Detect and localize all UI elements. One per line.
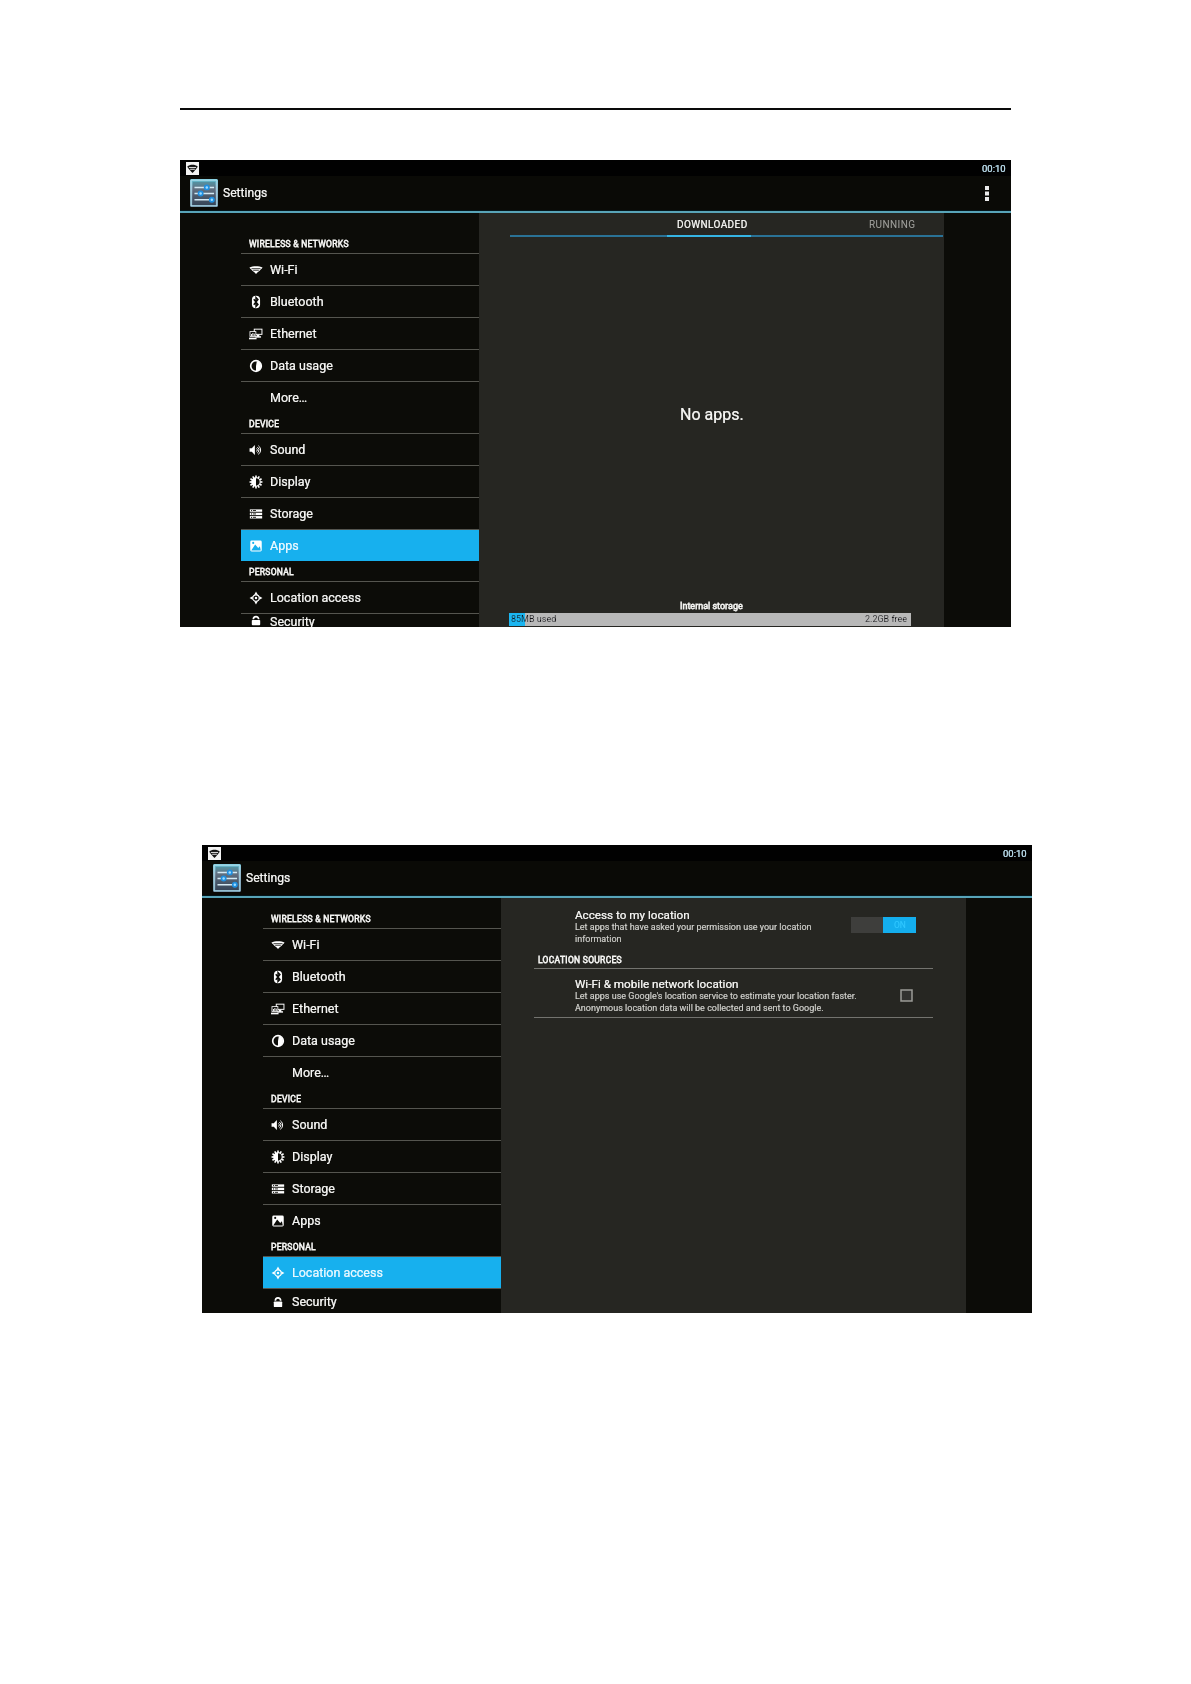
button[interactable]: RUNNING bbox=[845, 213, 939, 237]
staticText: Settings bbox=[223, 186, 268, 200]
staticText: Data usage bbox=[270, 358, 333, 373]
staticText: Wi-Fi bbox=[270, 262, 298, 277]
staticText: Security bbox=[292, 1294, 337, 1309]
staticText: Bluetooth bbox=[270, 294, 324, 309]
button[interactable]: Apps bbox=[263, 1205, 501, 1236]
staticText: DEVICE bbox=[249, 419, 280, 429]
button[interactable]: DOWNLOADED bbox=[668, 213, 756, 237]
staticText: PERSONAL bbox=[271, 1242, 316, 1252]
staticText: Sound bbox=[292, 1117, 328, 1132]
staticText: Display bbox=[292, 1149, 333, 1164]
staticText: Access to my location bbox=[575, 908, 690, 922]
staticText: Location access bbox=[270, 590, 361, 605]
button[interactable]: More options bbox=[977, 183, 997, 203]
staticText: Data usage bbox=[292, 1033, 355, 1048]
staticText: Let apps use Google's location service t… bbox=[575, 991, 857, 1013]
staticText: Storage bbox=[270, 506, 313, 521]
button[interactable]: Data usage bbox=[263, 1025, 501, 1056]
button[interactable]: Sound bbox=[241, 434, 479, 465]
staticText: Storage bbox=[292, 1181, 335, 1196]
button[interactable]: Wi-Fi and mobile network location checkb… bbox=[901, 990, 912, 1001]
button[interactable]: Location access bbox=[241, 582, 479, 613]
staticText: Location access bbox=[292, 1265, 383, 1280]
button[interactable]: Wi-Fi & mobile network location bbox=[575, 977, 885, 1013]
staticText: Ethernet bbox=[270, 326, 317, 341]
button[interactable]: Access to my location bbox=[575, 908, 840, 944]
staticText: ON bbox=[894, 920, 906, 930]
staticText: Apps bbox=[270, 538, 299, 553]
staticText: Ethernet bbox=[292, 1001, 339, 1016]
staticText: DOWNLOADED bbox=[677, 219, 748, 231]
button[interactable]: Wi-Fi bbox=[263, 929, 501, 960]
staticText: 85MB used bbox=[511, 614, 557, 625]
staticText: Security bbox=[270, 614, 315, 627]
staticText: Display bbox=[270, 474, 311, 489]
staticText: More… bbox=[270, 390, 308, 405]
staticText: PERSONAL bbox=[249, 567, 294, 577]
button[interactable]: More… bbox=[263, 1057, 501, 1088]
button[interactable]: Ethernet bbox=[241, 318, 479, 349]
button[interactable]: ON bbox=[851, 917, 916, 933]
button[interactable]: Storage bbox=[263, 1173, 501, 1204]
staticText: Bluetooth bbox=[292, 969, 346, 984]
staticText: DEVICE bbox=[271, 1094, 302, 1104]
button[interactable]: Security bbox=[241, 614, 479, 627]
button[interactable]: Security bbox=[263, 1289, 501, 1313]
staticText: Settings bbox=[246, 871, 291, 885]
button[interactable]: Display bbox=[263, 1141, 501, 1172]
button[interactable]: Sound bbox=[263, 1109, 501, 1140]
staticText: LOCATION SOURCES bbox=[538, 955, 622, 965]
staticText: Wi-Fi & mobile network location bbox=[575, 977, 739, 991]
button[interactable]: More… bbox=[241, 382, 479, 413]
button[interactable]: Display bbox=[241, 466, 479, 497]
staticText: Internal storage bbox=[680, 601, 743, 612]
staticText: 00:10 bbox=[1003, 848, 1027, 859]
staticText: 00:10 bbox=[982, 163, 1006, 174]
staticText: More… bbox=[292, 1065, 330, 1080]
button[interactable]: Wi-Fi bbox=[241, 254, 479, 285]
button[interactable]: Apps bbox=[241, 530, 479, 561]
staticText: WIRELESS & NETWORKS bbox=[249, 239, 349, 249]
button[interactable]: Bluetooth bbox=[241, 286, 479, 317]
button[interactable]: Location access bbox=[263, 1257, 501, 1288]
staticText: Sound bbox=[270, 442, 306, 457]
staticText: WIRELESS & NETWORKS bbox=[271, 914, 371, 924]
staticText: RUNNING bbox=[869, 219, 916, 231]
button[interactable]: Ethernet bbox=[263, 993, 501, 1024]
staticText: Apps bbox=[292, 1213, 321, 1228]
button[interactable]: Data usage bbox=[241, 350, 479, 381]
button[interactable]: Bluetooth bbox=[263, 961, 501, 992]
button[interactable]: Storage bbox=[241, 498, 479, 529]
staticText: Let apps that have asked your permission… bbox=[575, 922, 812, 944]
staticText: 2.2GB free bbox=[865, 614, 908, 625]
staticText: Wi-Fi bbox=[292, 937, 320, 952]
staticText: No apps. bbox=[680, 405, 744, 424]
